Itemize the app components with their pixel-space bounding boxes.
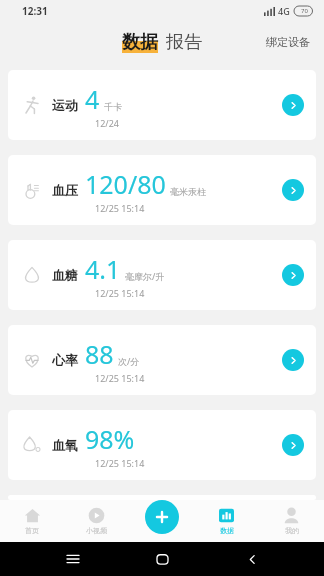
button[interactable]: Home xyxy=(145,542,179,576)
button[interactable]: View 血压 details xyxy=(282,179,304,201)
button[interactable]: Recent apps xyxy=(56,542,90,576)
staticText: 绑定设备 xyxy=(266,35,310,49)
staticText: 12/25 15:14 xyxy=(95,202,145,214)
button[interactable]: 数据 xyxy=(194,500,259,542)
button[interactable]: 首页 xyxy=(0,500,64,542)
button[interactable]: View 血糖 details xyxy=(282,264,304,286)
button[interactable]: 绑定设备 xyxy=(262,31,314,53)
button[interactable]: 数据 xyxy=(122,31,158,54)
button[interactable]: 血氧 xyxy=(8,410,316,480)
staticText: 心率 xyxy=(52,352,78,368)
button[interactable]: Back xyxy=(235,542,269,576)
staticText: 98% xyxy=(85,422,135,456)
staticText: 血糖 xyxy=(52,267,78,283)
button[interactable]: 报告 xyxy=(166,31,202,54)
staticText: 12:31 xyxy=(22,4,48,18)
staticText: 运动 xyxy=(52,97,78,113)
staticText: 千卡 xyxy=(104,101,122,112)
staticText: 报告 xyxy=(166,31,202,54)
staticText: 4.1 xyxy=(85,252,121,286)
staticText: 我的 xyxy=(285,526,299,535)
staticText: 120/80 xyxy=(85,167,166,201)
staticText: 血压 xyxy=(52,182,78,198)
button[interactable]: 血压 xyxy=(8,155,316,225)
button[interactable]: 心率 xyxy=(8,325,316,395)
staticText: 4 xyxy=(85,82,100,116)
staticText: 4G xyxy=(278,5,290,17)
button[interactable]: View 心率 details xyxy=(282,349,304,371)
staticText: 首页 xyxy=(25,526,39,535)
button[interactable]: View 血氧 details xyxy=(282,434,304,456)
staticText: 数据 xyxy=(220,526,234,535)
button[interactable]: View 运动 details xyxy=(282,94,304,116)
staticText: 12/25 15:14 xyxy=(95,287,145,299)
staticText: 次/分 xyxy=(118,355,140,367)
staticText: 小视频 xyxy=(86,526,107,535)
button[interactable]: Add record xyxy=(145,500,179,534)
staticText: 毫摩尔/升 xyxy=(125,270,165,282)
staticText: 12/24 xyxy=(95,117,119,129)
button[interactable]: 我的 xyxy=(259,500,324,542)
staticText: 血氧 xyxy=(52,437,78,453)
staticText: 数据 xyxy=(122,31,158,54)
button[interactable]: 运动 xyxy=(8,70,316,140)
button[interactable]: 小视频 xyxy=(64,500,129,542)
staticText: 毫米汞柱 xyxy=(170,186,206,197)
staticText: 12/25 15:14 xyxy=(95,457,145,469)
button[interactable]: 血糖 xyxy=(8,240,316,310)
staticText: 12/25 15:14 xyxy=(95,372,145,384)
staticText: 88 xyxy=(85,337,114,371)
staticText: 70 xyxy=(301,7,308,15)
